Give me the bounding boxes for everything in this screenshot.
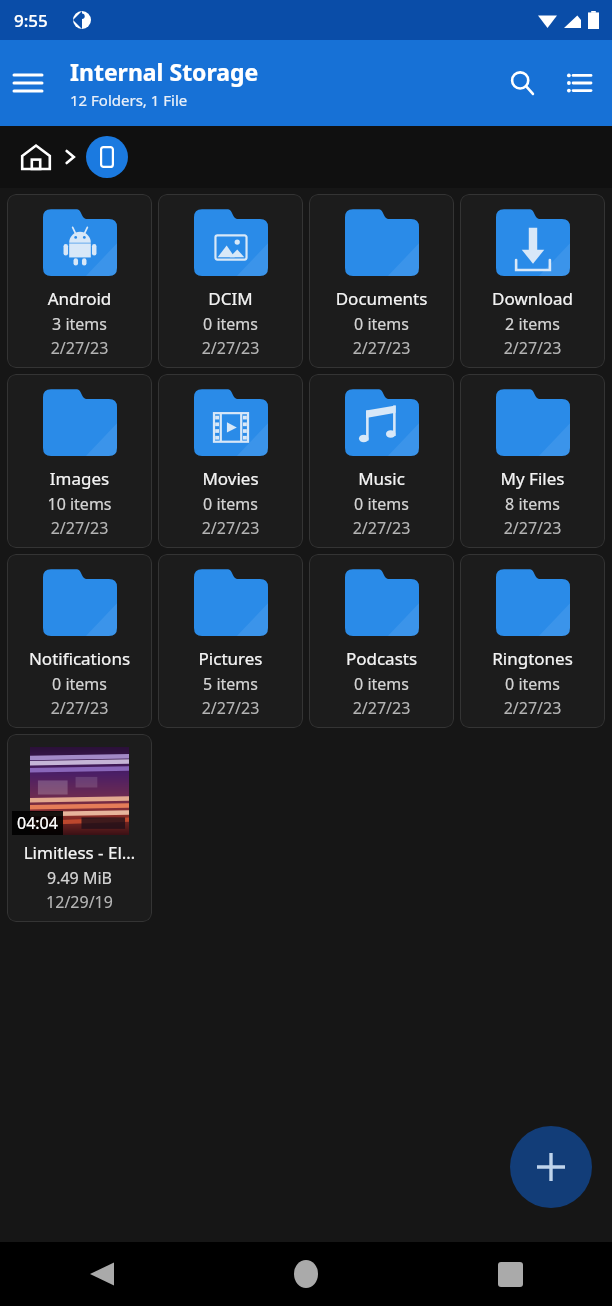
button[interactable]: Home — [14, 135, 58, 179]
staticText: 3 items — [7, 313, 152, 335]
staticText: 0 items — [309, 493, 454, 515]
staticText: Movies — [161, 467, 300, 490]
staticText: Limitless - El… — [10, 841, 149, 864]
button[interactable]: Internal storage — [86, 136, 128, 178]
staticText: My Files — [463, 467, 602, 490]
staticText: Music — [312, 467, 451, 490]
button[interactable]: Open navigation menu — [0, 55, 56, 111]
staticText: 2/27/23 — [309, 697, 454, 719]
staticText: 0 items — [7, 673, 152, 695]
button[interactable]: 04:04 — [7, 734, 152, 922]
button[interactable]: Movies — [158, 374, 303, 548]
staticText: 04:04 — [17, 812, 58, 834]
staticText: 2/27/23 — [460, 337, 605, 359]
staticText: 0 items — [460, 673, 605, 695]
staticText: 9:55 — [14, 9, 48, 32]
staticText: Podcasts — [312, 647, 451, 670]
staticText: 2/27/23 — [460, 697, 605, 719]
button[interactable]: Pictures — [158, 554, 303, 728]
staticText: 2 items — [460, 313, 605, 335]
staticText: Notifications — [10, 647, 149, 670]
button[interactable]: Music — [309, 374, 454, 548]
staticText: 0 items — [309, 313, 454, 335]
staticText: 2/27/23 — [158, 517, 303, 539]
staticText: Internal Storage — [70, 56, 259, 87]
staticText: 2/27/23 — [309, 337, 454, 359]
button[interactable]: View options — [550, 54, 608, 112]
button[interactable]: Download — [460, 194, 605, 368]
staticText: 5 items — [158, 673, 303, 695]
staticText: 2/27/23 — [7, 517, 152, 539]
staticText: 8 items — [460, 493, 605, 515]
button[interactable]: Ringtones — [460, 554, 605, 728]
button[interactable]: Documents — [309, 194, 454, 368]
button[interactable]: Images — [7, 374, 152, 548]
staticText: 12/29/19 — [7, 891, 152, 913]
staticText: 12 Folders, 1 File — [70, 90, 188, 110]
staticText: 2/27/23 — [158, 337, 303, 359]
staticText: 2/27/23 — [7, 697, 152, 719]
staticText: DCIM — [161, 287, 300, 310]
staticText: Documents — [312, 287, 451, 310]
button[interactable]: Search — [494, 55, 550, 111]
staticText: Images — [10, 467, 149, 490]
staticText: 0 items — [309, 673, 454, 695]
staticText: 0 items — [158, 493, 303, 515]
button[interactable]: Add — [510, 1126, 592, 1208]
staticText: 2/27/23 — [158, 697, 303, 719]
staticText: 2/27/23 — [7, 337, 152, 359]
staticText: Download — [463, 287, 602, 310]
staticText: Android — [10, 287, 149, 310]
button[interactable]: Notifications — [7, 554, 152, 728]
button[interactable]: Recent apps — [408, 1242, 612, 1306]
staticText: 2/27/23 — [460, 517, 605, 539]
staticText: 2/27/23 — [309, 517, 454, 539]
button[interactable]: DCIM — [158, 194, 303, 368]
staticText: Pictures — [161, 647, 300, 670]
staticText: Ringtones — [463, 647, 602, 670]
button[interactable]: Back — [0, 1242, 204, 1306]
button[interactable]: My Files — [460, 374, 605, 548]
button[interactable]: Podcasts — [309, 554, 454, 728]
button[interactable]: Home — [204, 1242, 408, 1306]
button[interactable]: Android — [7, 194, 152, 368]
staticText: 0 items — [158, 313, 303, 335]
staticText: 9.49 MiB — [7, 867, 152, 889]
staticText: 10 items — [7, 493, 152, 515]
